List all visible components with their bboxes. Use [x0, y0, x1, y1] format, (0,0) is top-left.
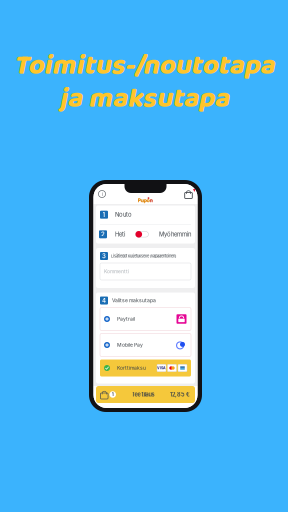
staticText: Kommentti — [104, 268, 129, 274]
button[interactable]: Paytrail — [100, 307, 191, 330]
button[interactable]: 2 — [96, 225, 195, 244]
button[interactable]: 1 — [96, 205, 195, 224]
staticText: Paytrail — [117, 316, 135, 322]
staticText: VISA — [157, 366, 166, 370]
staticText: Heti — [115, 231, 125, 238]
button[interactable]: Korttimaksu — [100, 359, 191, 376]
staticText: Nouto — [115, 211, 132, 218]
staticText: Myöhemmin — [159, 231, 191, 238]
staticText: Pupo — [137, 196, 149, 205]
staticText: 2 — [101, 231, 105, 238]
staticText: n — [149, 196, 152, 205]
staticText: 3 — [102, 252, 106, 260]
staticText: Mobile Pay — [117, 342, 143, 348]
staticText: ja maksutapa — [59, 77, 229, 121]
button[interactable]: 1 — [96, 386, 195, 403]
staticText: Lisätiedot kuljetukselle (vapaaehtoinen) — [111, 254, 176, 258]
button[interactable]: Shopping bag — [182, 187, 194, 200]
staticText: 1 — [112, 392, 114, 397]
staticText: Tee tilaus — [131, 391, 154, 398]
staticText: Korttimaksu — [117, 365, 146, 371]
button[interactable]: Mobile Pay — [100, 333, 191, 356]
staticText: Valitse maksutapa — [112, 297, 156, 303]
button[interactable]: Info — [96, 188, 107, 199]
staticText: 1 — [102, 211, 105, 218]
staticText: 12,85 € — [170, 391, 190, 398]
staticText: Toimitus-/noutotapa — [13, 44, 274, 88]
staticText: 4 — [102, 297, 106, 304]
